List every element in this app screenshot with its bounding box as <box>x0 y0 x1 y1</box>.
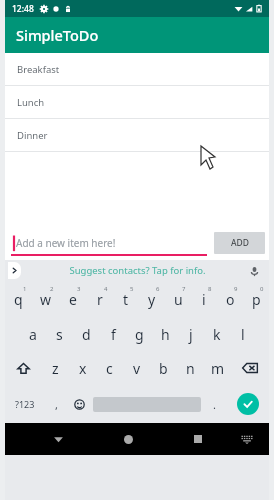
staticText: Breakfast <box>17 63 60 76</box>
button[interactable]: d <box>73 317 100 351</box>
staticText: , <box>55 397 58 412</box>
staticText: r <box>97 290 103 309</box>
button[interactable]: Expand suggestions <box>8 262 21 279</box>
button[interactable]: h <box>152 317 178 351</box>
button[interactable]: Emoji <box>68 385 91 423</box>
button[interactable]: Add a new item here! <box>9 226 210 260</box>
button[interactable]: SimpleToDo <box>5 17 269 53</box>
staticText: 5 <box>130 285 134 293</box>
staticText: f <box>111 325 116 344</box>
button[interactable]: Shift <box>5 351 42 385</box>
button[interactable]: o <box>217 281 243 317</box>
staticText: ?123 <box>15 398 35 410</box>
button[interactable]: e <box>59 281 86 317</box>
button[interactable]: Switch keyboard <box>233 423 261 455</box>
staticText: 4 <box>104 285 108 293</box>
staticText: k <box>213 325 221 344</box>
staticText: c <box>106 359 113 378</box>
staticText: 0 <box>260 285 264 293</box>
button[interactable]: y <box>139 281 165 317</box>
button[interactable]: Suggest contacts? Tap for info. <box>69 264 206 277</box>
button[interactable]: Recent apps <box>163 423 233 455</box>
staticText: n <box>186 359 195 378</box>
button[interactable]: r <box>86 281 113 317</box>
staticText: s <box>56 325 63 344</box>
button[interactable]: j <box>178 317 204 351</box>
button[interactable]: i <box>191 281 217 317</box>
staticText: p <box>252 290 261 309</box>
button[interactable]: a <box>19 317 46 351</box>
button[interactable]: b <box>150 351 177 385</box>
button[interactable]: z <box>42 351 69 385</box>
staticText: i <box>202 290 206 309</box>
button[interactable]: , <box>45 385 68 423</box>
staticText: a <box>29 325 37 344</box>
staticText: g <box>135 325 144 344</box>
button[interactable]: Voice input <box>247 264 261 278</box>
button[interactable]: m <box>204 351 231 385</box>
button[interactable]: Dinner <box>5 119 269 152</box>
staticText: w <box>40 290 52 309</box>
staticText: d <box>82 325 91 344</box>
button[interactable]: f <box>100 317 126 351</box>
staticText: . <box>213 397 216 412</box>
staticText: 2 <box>50 285 54 293</box>
staticText: Add a new item here! <box>16 236 116 250</box>
staticText: Dinner <box>17 129 48 142</box>
staticText: m <box>211 359 225 378</box>
button[interactable]: Hide keyboard <box>23 423 93 455</box>
staticText: v <box>133 359 141 378</box>
button[interactable]: x <box>69 351 96 385</box>
button[interactable]: n <box>177 351 204 385</box>
staticText: 7 <box>182 285 186 293</box>
staticText: o <box>226 290 235 309</box>
staticText: x <box>79 359 87 378</box>
staticText: z <box>52 359 59 378</box>
button[interactable]: g <box>126 317 152 351</box>
staticText: SimpleToDo <box>16 25 99 45</box>
button[interactable]: v <box>123 351 150 385</box>
staticText: b <box>159 359 168 378</box>
button[interactable]: ?123 <box>5 385 45 423</box>
button[interactable]: Lunch <box>5 86 269 119</box>
staticText: t <box>123 290 129 309</box>
button[interactable]: Enter <box>226 385 269 423</box>
staticText: u <box>174 290 183 309</box>
staticText: q <box>14 290 23 309</box>
button[interactable]: l <box>230 317 256 351</box>
staticText: l <box>241 325 245 344</box>
button[interactable]: c <box>96 351 123 385</box>
staticText: 3 <box>77 285 81 293</box>
button[interactable]: u <box>165 281 191 317</box>
staticText: 1 <box>23 285 27 293</box>
staticText: Suggest contacts? Tap for info. <box>69 264 206 277</box>
button[interactable]: p <box>243 281 269 317</box>
button[interactable] <box>91 385 203 423</box>
button[interactable]: k <box>204 317 230 351</box>
staticText: h <box>161 325 170 344</box>
button[interactable]: Breakfast <box>5 53 269 86</box>
staticText: 9 <box>234 285 238 293</box>
button[interactable]: ADD <box>214 232 265 254</box>
button[interactable]: t <box>113 281 139 317</box>
staticText: ADD <box>231 237 249 249</box>
button[interactable]: Home <box>93 423 163 455</box>
button[interactable]: w <box>32 281 59 317</box>
staticText: 12:48 <box>12 3 34 15</box>
staticText: j <box>189 325 193 344</box>
staticText: 8 <box>208 285 212 293</box>
staticText: Lunch <box>17 96 45 109</box>
button[interactable]: s <box>46 317 73 351</box>
staticText: e <box>69 290 77 309</box>
button[interactable]: . <box>203 385 226 423</box>
button[interactable]: q <box>5 281 32 317</box>
staticText: 6 <box>156 285 160 293</box>
staticText: y <box>148 290 156 309</box>
button[interactable]: Backspace <box>231 351 269 385</box>
